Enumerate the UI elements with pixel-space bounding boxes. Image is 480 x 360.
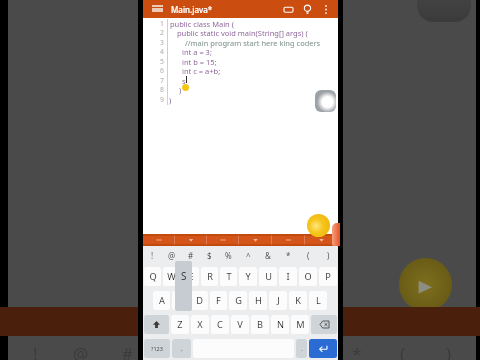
staticText: //main program start here king coders [185, 38, 321, 48]
button[interactable]: Enter [309, 339, 337, 358]
button[interactable]: * [278, 246, 298, 264]
staticText: C [217, 318, 223, 331]
staticText: @ [168, 250, 176, 261]
staticText: # [122, 342, 133, 360]
staticText: T [226, 270, 232, 283]
staticText: V [237, 318, 243, 331]
button[interactable]: Editor action 1 [143, 234, 175, 246]
button[interactable]: C [211, 315, 229, 334]
staticText: ?123 [151, 345, 163, 352]
button[interactable]: Q [144, 267, 161, 286]
staticText: ( [400, 342, 406, 360]
button[interactable]: V [231, 315, 249, 334]
button[interactable]: F [210, 291, 227, 310]
button[interactable]: U [259, 267, 277, 286]
button[interactable]: Y [239, 267, 257, 286]
button[interactable]: More options [317, 0, 335, 18]
button[interactable]: # [181, 246, 200, 264]
button[interactable]: X [191, 315, 209, 334]
button[interactable]: Editor action 2 [175, 234, 207, 246]
button[interactable]: L [309, 291, 327, 310]
button[interactable]: & [258, 246, 278, 264]
button[interactable]: Add [307, 214, 330, 237]
staticText: ^ [260, 342, 270, 360]
staticText: ! [151, 250, 154, 261]
button[interactable]: Navigation menu [148, 0, 166, 18]
staticText: G [235, 294, 242, 307]
button[interactable]: ?123 [144, 339, 170, 358]
staticText: s [182, 76, 186, 86]
button[interactable]: J [269, 291, 287, 310]
staticText: * [352, 342, 362, 360]
button[interactable]: R [201, 267, 218, 286]
staticText: L [316, 294, 321, 307]
button[interactable]: Editor action 4 [239, 234, 272, 246]
button[interactable]: ) [318, 246, 338, 264]
button[interactable]: K [289, 291, 307, 310]
staticText: N [277, 318, 284, 331]
button[interactable]: Editor action 6 [305, 234, 338, 246]
button[interactable]: @ [162, 246, 181, 264]
staticText: % [212, 342, 227, 360]
staticText: Z [177, 318, 183, 331]
staticText: $ [207, 250, 212, 261]
staticText: 2 [160, 28, 164, 37]
staticText: public class Main ( [170, 19, 234, 29]
staticText: , [181, 345, 183, 352]
button[interactable]: Backspace [311, 315, 337, 334]
button[interactable]: Open file [279, 0, 297, 18]
staticText: O [304, 270, 312, 283]
staticText: M [296, 318, 305, 331]
button[interactable]: H [249, 291, 267, 310]
staticText: & [305, 342, 318, 360]
button[interactable]: P [319, 267, 337, 286]
button[interactable]: W [163, 267, 180, 286]
staticText: Q [149, 270, 157, 283]
button[interactable]: . [296, 339, 307, 358]
button[interactable]: , [172, 339, 191, 358]
button[interactable]: Floating assistant [315, 90, 336, 112]
staticText: 4 [160, 47, 164, 56]
button[interactable]: Editor action 3 [207, 234, 239, 246]
staticText: 6 [160, 66, 164, 75]
staticText: . [301, 345, 303, 352]
staticText: ( [307, 250, 310, 261]
button[interactable]: ^ [238, 246, 258, 264]
staticText: K [295, 294, 301, 307]
button[interactable]: $ [200, 246, 219, 264]
button[interactable]: Run [298, 0, 316, 18]
button[interactable]: Z [171, 315, 189, 334]
button[interactable]: ! [143, 246, 162, 264]
staticText: Y [245, 270, 251, 283]
staticText: J [277, 294, 280, 307]
staticText: ) [446, 342, 452, 360]
button[interactable]: N [271, 315, 289, 334]
staticText: X [197, 318, 203, 331]
staticText: % [225, 250, 232, 261]
button[interactable]: A [153, 291, 170, 310]
button[interactable]: Shift [144, 315, 169, 334]
staticText: $ [168, 342, 178, 360]
staticText: H [255, 294, 262, 307]
button[interactable]: E [182, 267, 199, 286]
staticText: ) [169, 95, 172, 105]
staticText: R [207, 270, 213, 283]
staticText: & [265, 250, 271, 261]
button[interactable]: S [172, 291, 189, 310]
button[interactable]: G [229, 291, 247, 310]
button[interactable]: I [279, 267, 297, 286]
button[interactable]: Editor action 5 [272, 234, 305, 246]
staticText: 7 [160, 76, 164, 85]
button[interactable]: M [291, 315, 309, 334]
staticText: ) [327, 250, 330, 261]
button[interactable]: B [251, 315, 269, 334]
staticText: Main.java* [171, 4, 213, 15]
staticText: 5 [160, 57, 164, 66]
button[interactable]: % [219, 246, 238, 264]
button[interactable]: D [191, 291, 208, 310]
button[interactable]: ( [298, 246, 318, 264]
button[interactable]: T [220, 267, 237, 286]
button[interactable]: O [299, 267, 317, 286]
